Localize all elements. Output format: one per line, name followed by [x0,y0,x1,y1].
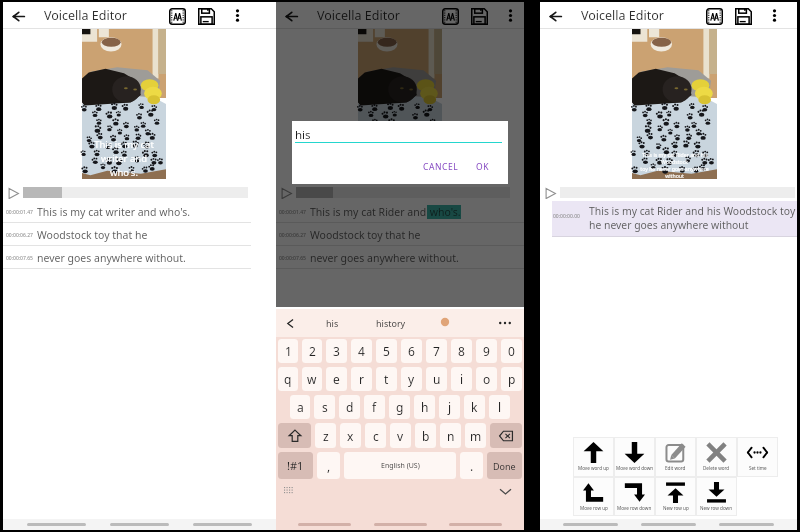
button[interactable]: n [440,423,461,448]
button[interactable]: u [426,367,447,391]
button[interactable]: Play [278,185,294,201]
button[interactable]: b [415,423,436,448]
button[interactable]: i [451,367,472,391]
button[interactable]: m [465,423,486,448]
button[interactable]: Navigation [449,523,502,526]
button[interactable]: Hide keyboard [498,484,512,498]
button[interactable]: w [302,367,322,391]
button[interactable]: o [476,367,497,391]
button[interactable]: 7 [426,339,447,363]
button[interactable]: 4 [351,339,372,363]
staticText: New row down [700,505,733,511]
button[interactable]: q [278,367,298,391]
button[interactable]: New row up [655,477,696,516]
button[interactable]: Save [468,5,490,27]
staticText: 3 [333,343,340,359]
button[interactable]: p [501,367,522,391]
button[interactable]: y [401,367,422,391]
button[interactable]: 0 [501,339,522,363]
button[interactable]: 00:00:07.65 [3,246,276,269]
button[interactable]: Done [487,452,522,479]
button[interactable]: 6 [401,339,422,363]
button[interactable]: !#1 [278,452,313,479]
button[interactable]: More options [500,5,520,25]
button[interactable]: Play [5,185,21,201]
button[interactable]: v [390,423,411,448]
button[interactable]: 8 [451,339,472,363]
button[interactable]: Back [8,6,28,26]
button[interactable]: , [317,452,340,479]
staticText: 00:00:01.47 [6,209,33,216]
button[interactable]: Shift [278,423,311,448]
button[interactable]: 3 [326,339,347,363]
button[interactable]: t [376,367,397,391]
button[interactable]: Back [545,6,565,26]
button[interactable]: . [460,452,483,479]
button[interactable]: h [414,395,435,419]
button[interactable]: Keyboard settings [284,487,294,497]
button[interactable]: Navigation [110,523,169,526]
button[interactable]: d [339,395,360,419]
button[interactable]: Play [542,185,558,201]
button[interactable]: 2 [302,339,322,363]
button[interactable]: English (US) [344,452,456,479]
button[interactable]: New row down [696,477,737,516]
button[interactable]: 00:00:01.47 [276,200,524,223]
button[interactable]: a [290,395,310,419]
button[interactable]: Edit word [655,437,696,477]
button[interactable]: Move word up [573,437,614,477]
button[interactable]: Captions [439,5,461,27]
button[interactable]: Navigation [27,523,86,526]
button[interactable]: Captions [166,5,188,27]
staticText: y [408,371,415,387]
button[interactable]: c [365,423,386,448]
button[interactable]: CANCEL [417,156,465,178]
button[interactable]: Navigation [563,523,618,526]
button[interactable]: More options [764,5,784,25]
button[interactable]: k [464,395,485,419]
button[interactable]: history [376,317,406,329]
button[interactable]: OK [470,156,496,178]
button[interactable]: Navigation [641,523,696,526]
button[interactable]: 00:00:01.47 [3,200,276,223]
button[interactable]: Captions [703,5,725,27]
staticText: n [447,428,455,444]
staticText: 00:00:07.65 [279,255,306,262]
button[interactable]: Previous suggestion [283,316,297,330]
button[interactable]: Emoji [440,317,450,327]
button[interactable]: Navigation [374,523,427,526]
button[interactable]: l [489,395,510,419]
button[interactable]: 1 [278,339,298,363]
button[interactable]: g [389,395,410,419]
button[interactable]: Back [281,6,301,26]
button[interactable]: z [315,423,336,448]
button[interactable]: 00:00:06.27 [3,223,276,246]
button[interactable]: Move row up [573,477,614,516]
button[interactable]: Save [732,5,754,27]
button[interactable]: Navigation [298,523,351,526]
button[interactable]: e [326,367,347,391]
button[interactable]: 5 [376,339,397,363]
button[interactable]: More options [227,5,247,25]
button[interactable]: r [351,367,372,391]
button[interactable]: Navigation [193,523,252,526]
button[interactable]: Move word down [614,437,655,477]
button[interactable]: Set time [737,437,778,477]
button[interactable]: 9 [476,339,497,363]
button[interactable]: j [439,395,460,419]
staticText: 9 [483,343,490,359]
button[interactable]: 00:00:06.27 [276,223,524,246]
button[interactable]: f [364,395,385,419]
button[interactable]: 00:00:07.65 [276,246,524,269]
button[interactable]: Move row down [614,477,655,516]
button[interactable]: More [498,316,512,330]
button[interactable]: Save [195,5,217,27]
button[interactable]: Navigation [719,523,774,526]
button[interactable]: Backspace [490,423,522,448]
button[interactable]: x [340,423,361,448]
button[interactable]: Delete word [696,437,737,477]
button[interactable]: 00:00:00.00 [552,201,797,237]
button[interactable]: s [314,395,335,419]
button[interactable]: his [326,317,339,329]
staticText: a [297,399,304,415]
